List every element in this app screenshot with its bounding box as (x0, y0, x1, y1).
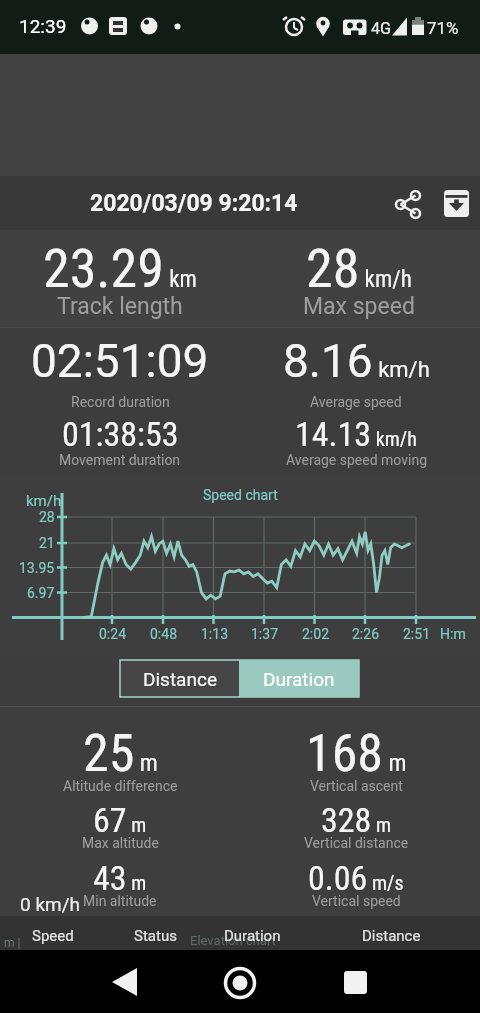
staticText: Min altitude (83, 893, 157, 909)
staticText: 25 m (83, 723, 158, 777)
staticText: 2:02 (302, 626, 329, 642)
staticText: 8.16 km/h (283, 334, 430, 386)
button[interactable] (440, 186, 474, 220)
button[interactable] (330, 956, 380, 1006)
staticText: Max speed (303, 293, 415, 319)
staticText: Max altitude (82, 835, 159, 851)
staticText: km/h (26, 492, 62, 510)
staticText: Track length (57, 293, 183, 319)
staticText: Vertical distance (304, 835, 409, 851)
staticText: 71% (427, 18, 459, 38)
staticText: 0 km/h (20, 893, 80, 915)
staticText: Duration (224, 927, 281, 945)
staticText: Average speed (310, 394, 402, 410)
staticText: 1:13 (201, 626, 228, 642)
staticText: 67 m (93, 800, 147, 834)
button[interactable]: Duration (239, 660, 359, 697)
staticText: 6.97 (27, 585, 55, 601)
staticText: 4G (371, 19, 391, 38)
button[interactable] (215, 956, 265, 1006)
staticText: H:m (440, 626, 466, 642)
staticText: Speed chart (203, 487, 278, 503)
staticText: Vertical ascent (310, 778, 403, 794)
staticText: 28 km/h (306, 237, 412, 297)
button[interactable]: Distance (120, 660, 239, 697)
button[interactable]: Duration (197, 922, 307, 950)
staticText: 1:37 (251, 626, 278, 642)
staticText: Duration (263, 668, 335, 690)
staticText: 2:51 (403, 626, 430, 642)
button[interactable]: Distance (336, 922, 446, 950)
button[interactable]: Status (100, 922, 210, 950)
staticText: 02:51:09 (31, 334, 209, 386)
staticText: m | (4, 936, 21, 950)
button[interactable] (98, 956, 148, 1006)
staticText: 0:48 (150, 626, 177, 642)
staticText: Elevation chart (190, 933, 276, 948)
staticText: Record duration (71, 394, 170, 410)
staticText: Distance (362, 927, 421, 945)
staticText: Altitude difference (63, 778, 178, 794)
staticText: Distance (143, 668, 217, 690)
staticText: 14.13 km/h (295, 414, 417, 448)
staticText: 21 (39, 535, 55, 551)
staticText: 328 m (321, 800, 392, 834)
staticText: Vertical speed (312, 893, 401, 909)
staticText: Average speed moving (286, 452, 427, 468)
button[interactable] (390, 186, 426, 222)
staticText: 0.06 m/s (308, 858, 404, 892)
staticText: Movement duration (59, 452, 181, 468)
staticText: 23.29 km (43, 237, 197, 297)
staticText: 01:38:53 (62, 414, 179, 448)
staticText: Speed (32, 927, 74, 945)
staticText: 0:24 (99, 626, 126, 642)
staticText: Status (134, 927, 177, 945)
button[interactable]: Speed (0, 922, 108, 950)
staticText: 2020/03/09 9:20:14 (90, 190, 298, 217)
staticText: 28 (39, 509, 55, 525)
staticText: 168 m (306, 723, 407, 777)
staticText: 13.95 (19, 560, 55, 576)
staticText: 12:39 (19, 15, 67, 37)
staticText: 43 m (93, 858, 147, 892)
staticText: 2:26 (352, 626, 379, 642)
